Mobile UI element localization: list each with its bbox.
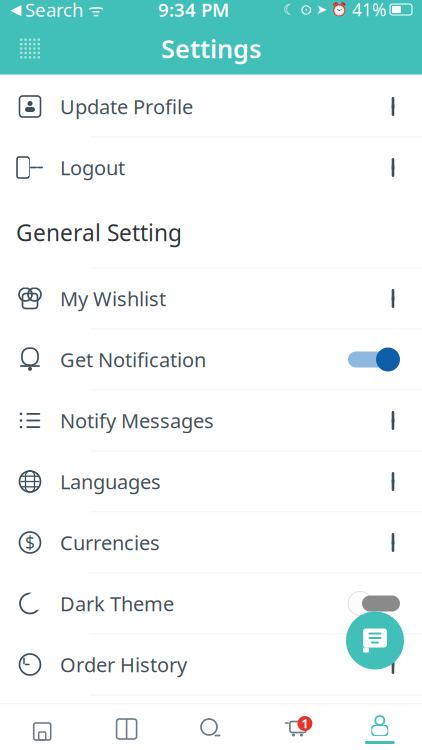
staticText: 1	[301, 715, 308, 731]
button[interactable]: Notify Messages	[0, 390, 422, 450]
button[interactable]: Dark Theme	[0, 573, 422, 633]
staticText: ➤	[316, 2, 327, 17]
staticText: Order History	[60, 651, 187, 678]
button[interactable]: Cart, 1 item	[253, 705, 338, 750]
staticText: Notify Messages	[60, 407, 214, 434]
staticText: Settings	[161, 32, 261, 65]
staticText: ⊙	[300, 1, 312, 18]
staticText: My Wishlist	[60, 285, 166, 312]
button[interactable]: My Wishlist	[0, 268, 422, 328]
button[interactable]: Chat	[340, 605, 410, 675]
staticText: Currencies	[60, 529, 160, 556]
staticText: Update Profile	[60, 93, 193, 120]
staticText: Search	[25, 0, 84, 22]
staticText: 41%	[352, 0, 386, 21]
button[interactable]: Menu	[8, 26, 52, 70]
staticText: Get Notification	[60, 346, 206, 373]
staticText: Languages	[60, 468, 161, 495]
staticText: ᯤ	[88, 0, 104, 21]
staticText: Dark Theme	[60, 590, 174, 617]
staticText: General Setting	[16, 217, 182, 247]
button[interactable]: Languages	[0, 451, 422, 511]
button[interactable]: Get Notification	[0, 329, 422, 389]
button[interactable]: Account	[338, 705, 422, 750]
staticText: ☾	[283, 1, 296, 18]
button[interactable]: Update Profile	[0, 76, 422, 136]
staticText: ◀	[10, 1, 21, 18]
button[interactable]: $	[0, 512, 422, 572]
button[interactable]: Logout	[0, 137, 422, 197]
button[interactable]: Order History	[0, 634, 422, 694]
button[interactable]: Home	[0, 705, 84, 750]
button[interactable]: Search	[169, 705, 253, 750]
staticText: 9:34 PM	[158, 0, 229, 22]
staticText: $	[25, 531, 35, 554]
button[interactable]: Categories	[84, 705, 169, 750]
staticText: Logout	[60, 154, 125, 181]
staticText: ⏰	[331, 2, 348, 17]
